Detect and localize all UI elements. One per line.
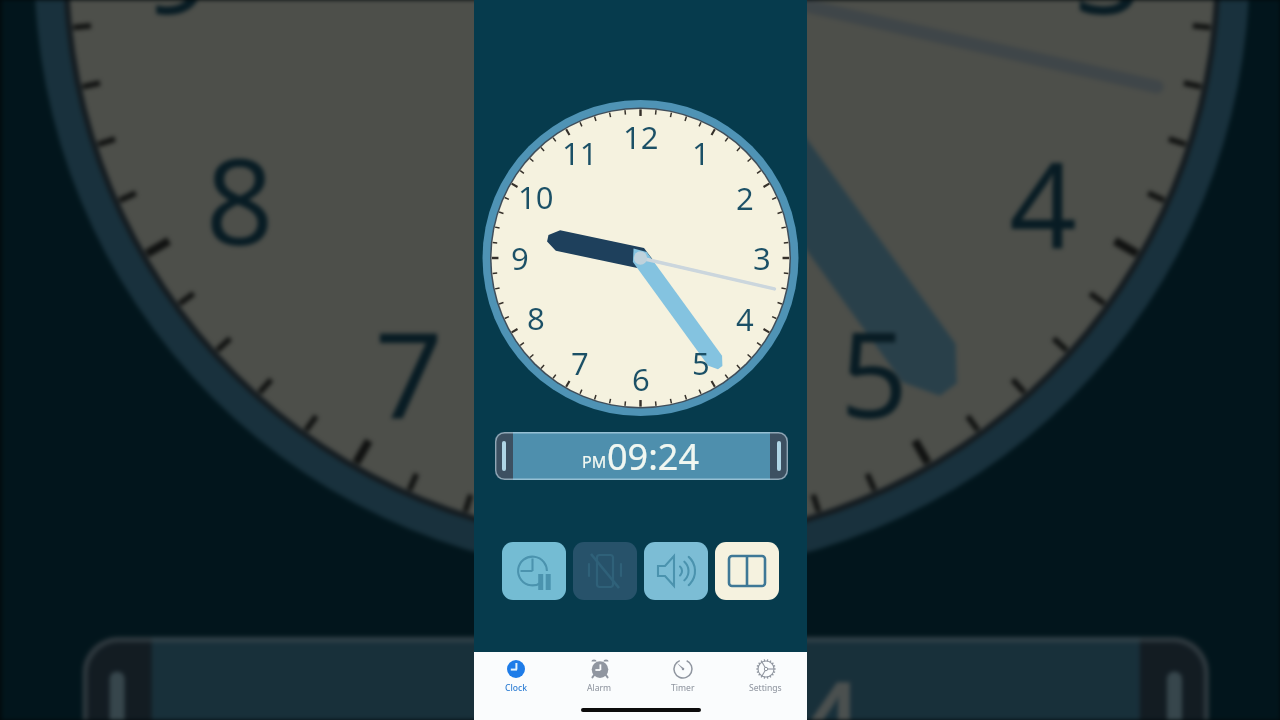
- staticText: PM: [582, 451, 607, 473]
- staticText: 11: [562, 132, 598, 174]
- staticText: 8: [205, 118, 275, 279]
- button[interactable]: Timer: [641, 652, 724, 696]
- staticText: Timer: [671, 682, 695, 694]
- staticText: 7: [375, 291, 444, 452]
- staticText: 10: [518, 176, 554, 218]
- staticText: Clock: [505, 682, 528, 694]
- staticText: 3: [1074, 0, 1144, 49]
- staticText: 9: [144, 0, 213, 49]
- button[interactable]: Alarm: [558, 652, 641, 696]
- button[interactable]: Clock: [474, 652, 558, 696]
- staticText: 7: [571, 342, 589, 384]
- staticText: 1: [692, 132, 710, 174]
- staticText: Alarm: [587, 682, 612, 694]
- staticText: 3: [753, 237, 771, 279]
- staticText: Settings: [749, 682, 782, 694]
- staticText: 5: [692, 342, 710, 384]
- staticText: 9: [511, 237, 529, 279]
- button[interactable]: Split screen: [715, 542, 779, 600]
- staticText: 2: [736, 177, 754, 219]
- button[interactable]: Shake to snooze, off: [573, 542, 637, 600]
- staticText: PM: [417, 710, 513, 720]
- staticText: 12: [623, 116, 659, 158]
- staticText: 8: [527, 297, 545, 339]
- staticText: 09:24: [513, 637, 871, 720]
- staticText: 6: [609, 352, 678, 514]
- button[interactable]: Bedtime timer: [502, 542, 566, 600]
- button[interactable]: Settings: [724, 652, 807, 696]
- staticText: 09:24: [607, 432, 700, 480]
- staticText: 4: [736, 298, 754, 340]
- button[interactable]: Volume: [644, 542, 708, 600]
- staticText: 6: [632, 358, 650, 400]
- staticText: 5: [840, 291, 909, 452]
- button[interactable]: PM: [495, 432, 788, 480]
- staticText: 4: [1009, 122, 1078, 283]
